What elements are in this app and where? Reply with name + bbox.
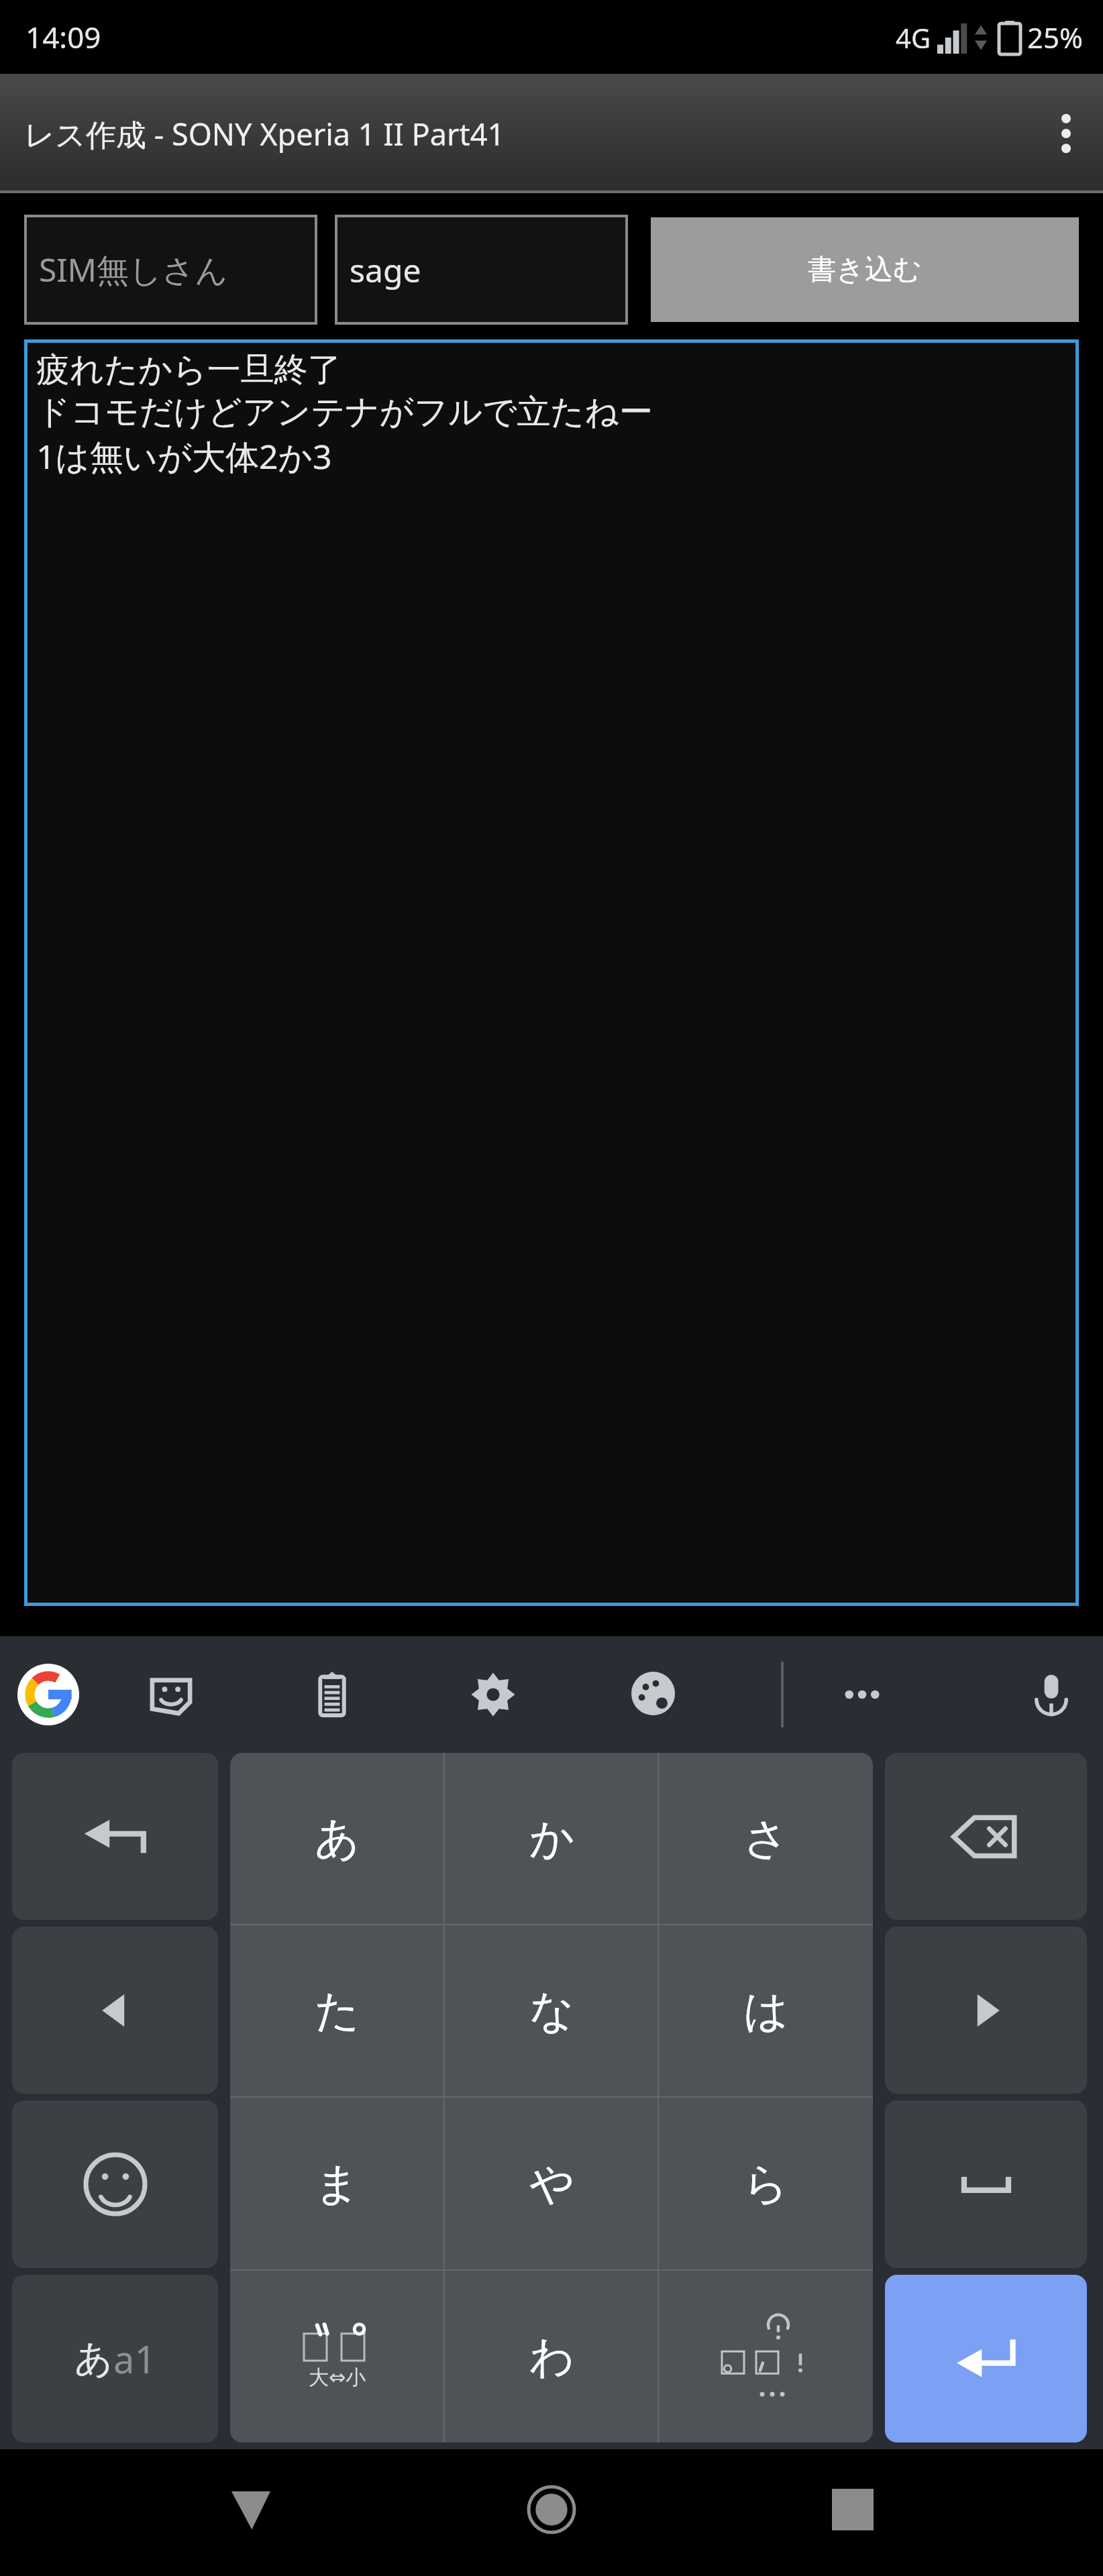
button[interactable]: Back xyxy=(201,2459,301,2560)
button[interactable]: あ xyxy=(12,2275,218,2443)
button[interactable] xyxy=(659,2271,873,2443)
button[interactable]: や xyxy=(445,2098,659,2269)
button[interactable]: Cursor right xyxy=(885,1927,1087,2094)
staticText: 疲れたから一旦終了 xyxy=(36,349,342,391)
staticText: や xyxy=(529,2156,575,2212)
button[interactable]: Clipboard xyxy=(295,1658,369,1731)
button[interactable]: Settings xyxy=(456,1658,530,1731)
button[interactable]: あ xyxy=(230,1753,445,1924)
staticText: 25% xyxy=(1027,18,1083,56)
button[interactable]: Emoji xyxy=(12,2100,218,2268)
button[interactable]: ま xyxy=(230,2098,445,2269)
button[interactable]: SIM無しさん xyxy=(24,215,317,325)
button[interactable]: Cursor left xyxy=(12,1927,218,2094)
staticText: さ xyxy=(743,1811,789,1866)
button[interactable]: Backspace xyxy=(885,1753,1087,1920)
staticText: は xyxy=(743,1983,789,2039)
staticText: た xyxy=(315,1983,360,2039)
staticText: ま xyxy=(315,2156,360,2212)
button[interactable]: Recents xyxy=(802,2459,903,2560)
staticText: な xyxy=(529,1983,575,2039)
staticText: 4G xyxy=(896,19,931,56)
button[interactable]: は xyxy=(659,1925,873,2096)
staticText: 書き込む xyxy=(808,252,922,288)
button[interactable]: 大⇔小 xyxy=(230,2271,445,2443)
staticText: あ xyxy=(315,1811,360,1866)
staticText: SIM無しさん xyxy=(39,248,228,292)
button[interactable]: ら xyxy=(659,2098,873,2269)
button[interactable]: Themes xyxy=(617,1658,691,1731)
staticText: a1 xyxy=(113,2333,156,2384)
staticText: レス作成 - SONY Xperia 1 II Part41 xyxy=(24,113,505,154)
staticText: ら xyxy=(743,2156,789,2212)
button[interactable]: Google xyxy=(15,1661,82,1728)
button[interactable]: か xyxy=(445,1753,659,1924)
staticText: ドコモだけどアンテナがフルで立たねー xyxy=(36,391,653,433)
staticText: 14:09 xyxy=(25,17,101,57)
button[interactable]: Space xyxy=(885,2100,1087,2268)
button[interactable]: Home xyxy=(501,2459,602,2560)
button[interactable]: Undo xyxy=(12,1753,218,1920)
button[interactable]: た xyxy=(230,1925,445,2096)
button[interactable]: な xyxy=(445,1925,659,2096)
button[interactable]: More xyxy=(825,1658,899,1731)
staticText: 大⇔小 xyxy=(309,2365,366,2390)
staticText: わ xyxy=(529,2329,575,2385)
button[interactable]: Stickers xyxy=(134,1658,208,1731)
button[interactable]: 疲れたから一旦終了 xyxy=(24,339,1079,1606)
button[interactable]: さ xyxy=(659,1753,873,1924)
staticText: sage xyxy=(350,248,421,292)
button[interactable]: わ xyxy=(445,2271,659,2443)
button[interactable]: Voice input xyxy=(1014,1658,1088,1731)
staticText: あ xyxy=(74,2335,113,2383)
staticText: 1は無いが大体2か3 xyxy=(36,433,332,479)
button[interactable]: 書き込む xyxy=(651,217,1079,322)
staticText: か xyxy=(529,1811,575,1866)
button[interactable]: Enter xyxy=(885,2275,1087,2443)
button[interactable]: More options xyxy=(1029,97,1103,170)
button[interactable]: sage xyxy=(335,215,628,325)
